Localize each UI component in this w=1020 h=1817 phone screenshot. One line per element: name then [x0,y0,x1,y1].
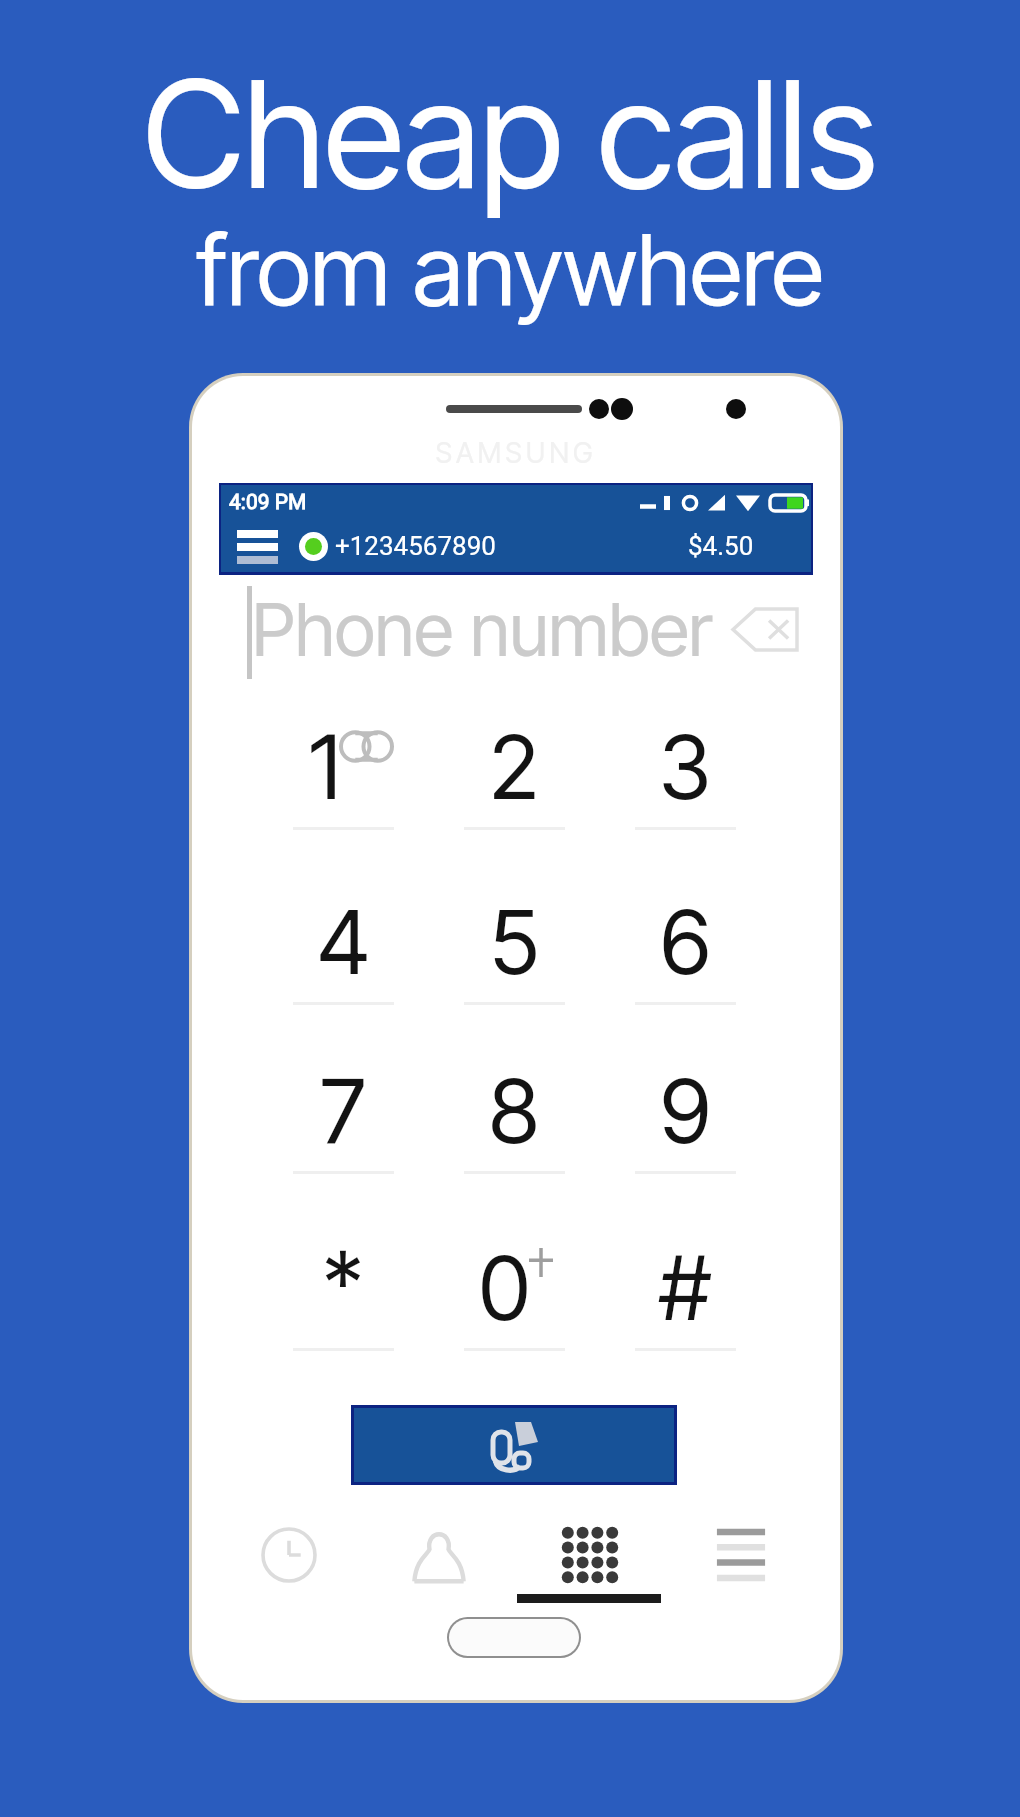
staticText: from anywhere [0,211,1020,328]
button[interactable]: 4 [258,864,428,1036]
staticText: * [323,1230,363,1336]
staticText: 7 [320,1058,366,1164]
staticText: Phone number [252,585,713,673]
button[interactable]: 1 [258,689,428,861]
button[interactable]: 3 [600,689,770,861]
staticText: $4.50 [688,531,754,561]
button[interactable]: Call [354,1408,674,1482]
button[interactable]: Recents [233,1499,345,1611]
staticText: 0 [479,1235,530,1341]
staticText: # [659,1235,711,1341]
staticText: 5 [490,889,539,995]
staticText: 9 [660,1058,711,1164]
button[interactable]: 2 [429,689,599,861]
button[interactable]: Dialpad [534,1499,646,1611]
staticText: Cheap calls [0,45,1020,224]
button[interactable]: Menu [233,526,282,566]
staticText: 1 [309,714,341,820]
button[interactable]: 5 [429,864,599,1036]
staticText: 4:09 PM [229,490,307,515]
staticText: +1234567890 [335,531,496,561]
staticText: 6 [660,889,711,995]
staticText: 3 [659,714,711,820]
button[interactable]: Backspace [731,607,799,652]
staticText: 4 [317,889,370,995]
staticText: 2 [489,714,539,820]
button[interactable]: # [600,1210,770,1382]
button[interactable]: 8 [429,1033,599,1205]
button[interactable]: More [685,1499,797,1611]
button[interactable]: 7 [258,1033,428,1205]
button[interactable]: * [258,1210,428,1382]
button[interactable]: 6 [600,864,770,1036]
button[interactable]: 9 [600,1033,770,1205]
button[interactable]: 0 [429,1210,599,1382]
staticText: 8 [489,1058,539,1164]
button[interactable]: Contacts [383,1499,495,1611]
